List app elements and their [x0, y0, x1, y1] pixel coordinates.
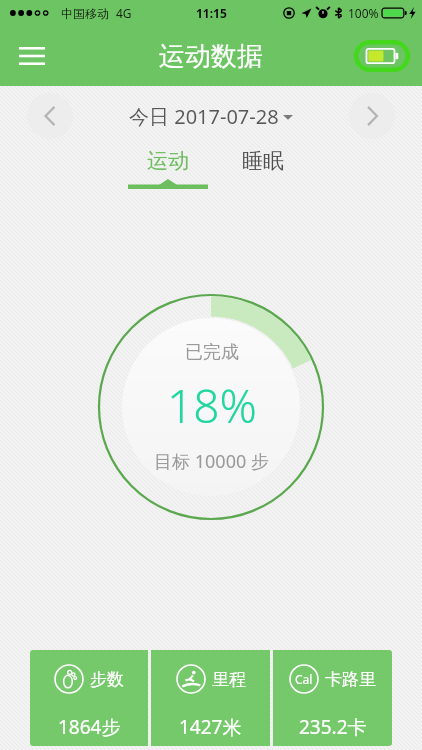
staticText: 运动 — [147, 148, 189, 174]
staticText: 今日 2017-07-28 — [129, 103, 279, 130]
staticText: 目标 10000 步 — [154, 449, 269, 474]
staticText: 步数 — [90, 669, 124, 690]
staticText: 4G — [116, 5, 132, 21]
staticText: 睡眠 — [242, 148, 284, 174]
staticText: 11:15 — [196, 5, 227, 21]
staticText: 运动数据 — [159, 40, 263, 73]
staticText: 235.2卡 — [299, 714, 367, 740]
button[interactable]: Previous day — [27, 93, 73, 139]
staticText: 里程 — [212, 669, 246, 690]
staticText: 卡路里 — [325, 669, 376, 690]
button[interactable]: 已完成 — [97, 293, 325, 521]
button[interactable]: Device battery — [354, 38, 410, 74]
staticText: 1864步 — [58, 714, 121, 740]
staticText: 1427米 — [179, 714, 242, 740]
staticText: 18% — [167, 374, 257, 437]
button[interactable]: 今日 2017-07-28 — [129, 103, 293, 130]
button[interactable]: Steps — [30, 650, 148, 746]
staticText: 中国移动 — [61, 6, 109, 21]
staticText: Cal — [295, 671, 313, 687]
button[interactable]: 睡眠 — [232, 148, 294, 189]
staticText: 100% — [348, 5, 379, 21]
button[interactable]: Distance — [151, 650, 270, 746]
staticText: 已完成 — [185, 341, 239, 364]
button[interactable]: 运动 — [128, 148, 208, 189]
button[interactable]: Calories — [273, 650, 392, 746]
button[interactable]: Menu — [8, 32, 56, 80]
button[interactable]: Next day — [349, 93, 395, 139]
